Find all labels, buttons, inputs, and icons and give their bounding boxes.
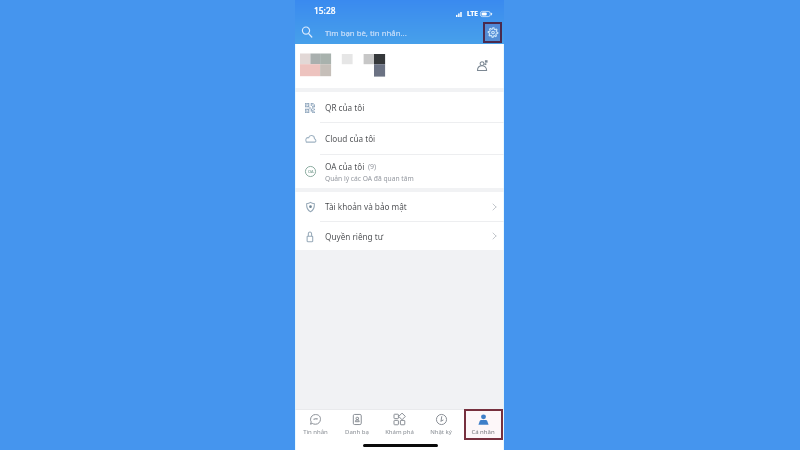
staticText: Tài khoản và bảo mật [325, 201, 407, 212]
button[interactable]: Search [295, 20, 317, 43]
staticText: Khám phá [385, 428, 414, 436]
staticText: OA [308, 169, 314, 174]
staticText: Danh bạ [345, 428, 369, 436]
staticText: LTE [467, 9, 478, 18]
staticText: Cá nhân [471, 428, 495, 436]
staticText: (9) [368, 162, 377, 172]
staticText: Quản lý các OA đã quan tâm [325, 174, 414, 183]
button[interactable]: Khám phá [378, 410, 420, 441]
button[interactable]: QR của tôi [295, 92, 504, 122]
staticText: Tin nhắn [303, 428, 328, 436]
button[interactable]: Tài khoản và bảo mật [295, 192, 504, 221]
staticText: Nhật ký [430, 428, 452, 436]
staticText: Cloud của tôi [325, 133, 376, 144]
button[interactable]: Add friend [472, 54, 494, 76]
staticText: 15:28 [314, 5, 336, 16]
button[interactable]: OA [295, 155, 504, 188]
button[interactable]: Cá nhân [462, 410, 504, 441]
staticText: OA của tôi [325, 161, 365, 172]
button[interactable]: Quyền riêng tư [295, 222, 504, 250]
button[interactable]: Add friend [295, 44, 504, 88]
button[interactable]: Cloud của tôi [295, 123, 504, 154]
button[interactable]: Settings [483, 22, 502, 43]
staticText: Quyền riêng tư [325, 231, 384, 242]
button[interactable]: Nhật ký [420, 410, 462, 441]
staticText: QR của tôi [325, 102, 365, 113]
staticText: Tìm bạn bè, tin nhắn... [325, 28, 407, 39]
button[interactable]: Tin nhắn [295, 410, 336, 441]
button[interactable]: Danh bạ [336, 410, 378, 441]
